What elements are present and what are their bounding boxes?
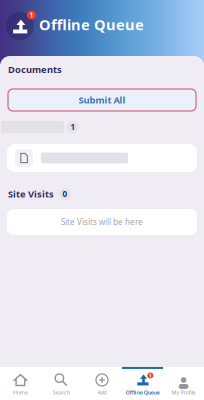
staticText: Site Visits will be here: [61, 217, 143, 227]
staticText: Offline Queue: [126, 389, 160, 396]
staticText: Search: [53, 389, 70, 396]
staticText: Documents: [8, 63, 62, 76]
staticText: 1: [29, 11, 33, 19]
staticText: 1: [149, 372, 152, 379]
staticText: 1: [70, 122, 75, 132]
button[interactable]: Add: [82, 367, 122, 400]
staticText: Home: [13, 389, 28, 396]
button[interactable]: Submit All: [8, 89, 196, 111]
button[interactable]: Home: [0, 367, 41, 400]
staticText: Offline Queue: [39, 15, 144, 34]
staticText: Site Visits: [8, 188, 54, 200]
staticText: My Profile: [172, 389, 196, 396]
staticText: 0: [62, 189, 67, 199]
staticText: Add: [97, 389, 106, 396]
button[interactable]: [0, 144, 204, 172]
button[interactable]: 1: [122, 367, 163, 400]
button[interactable]: Search: [41, 367, 82, 400]
staticText: Submit All: [78, 94, 125, 106]
button[interactable]: My Profile: [163, 367, 204, 400]
